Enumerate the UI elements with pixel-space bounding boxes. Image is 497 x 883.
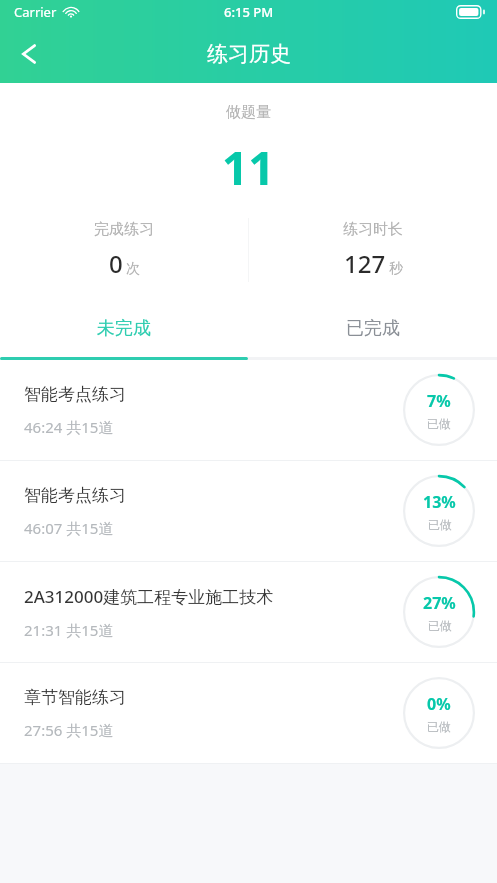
button[interactable]: 已完成 — [248, 300, 497, 357]
staticText: 未完成 — [97, 317, 151, 340]
staticText: 已做 — [427, 416, 451, 431]
staticText: 秒 — [389, 260, 403, 278]
staticText: 46:24 共15道 — [24, 417, 114, 437]
staticText: 27% — [423, 592, 456, 614]
button[interactable]: 智能考点练习 — [0, 461, 497, 561]
staticText: 练习时长 — [343, 220, 403, 239]
staticText: 0% — [427, 693, 451, 715]
button[interactable]: 未完成 — [0, 300, 248, 357]
staticText: 13% — [423, 491, 456, 513]
staticText: 已做 — [428, 618, 452, 633]
staticText: Carrier — [14, 3, 57, 21]
staticText: 智能考点练习 — [24, 485, 126, 506]
staticText: 完成练习 — [94, 220, 154, 239]
staticText: 做题量 — [226, 103, 271, 122]
button[interactable]: 2A312000建筑工程专业施工技术 — [0, 562, 497, 662]
staticText: 练习历史 — [207, 41, 291, 67]
staticText: 0 — [109, 247, 123, 280]
staticText: 6:15 PM — [224, 3, 274, 21]
staticText: 27:56 共15道 — [24, 720, 114, 740]
staticText: 21:31 共15道 — [24, 620, 114, 640]
staticText: 2A312000建筑工程专业施工技术 — [24, 585, 274, 608]
staticText: 11 — [222, 136, 275, 199]
staticText: 已完成 — [346, 317, 400, 340]
button[interactable]: Back — [6, 31, 52, 77]
button[interactable]: 智能考点练习 — [0, 360, 497, 460]
staticText: 已做 — [427, 719, 451, 734]
staticText: 127 — [344, 247, 386, 280]
staticText: 已做 — [428, 517, 452, 532]
staticText: 次 — [126, 260, 140, 278]
staticText: 章节智能练习 — [24, 687, 126, 708]
button[interactable]: 章节智能练习 — [0, 663, 497, 763]
staticText: 7% — [427, 390, 451, 412]
staticText: 智能考点练习 — [24, 384, 126, 405]
staticText: 46:07 共15道 — [24, 518, 114, 538]
